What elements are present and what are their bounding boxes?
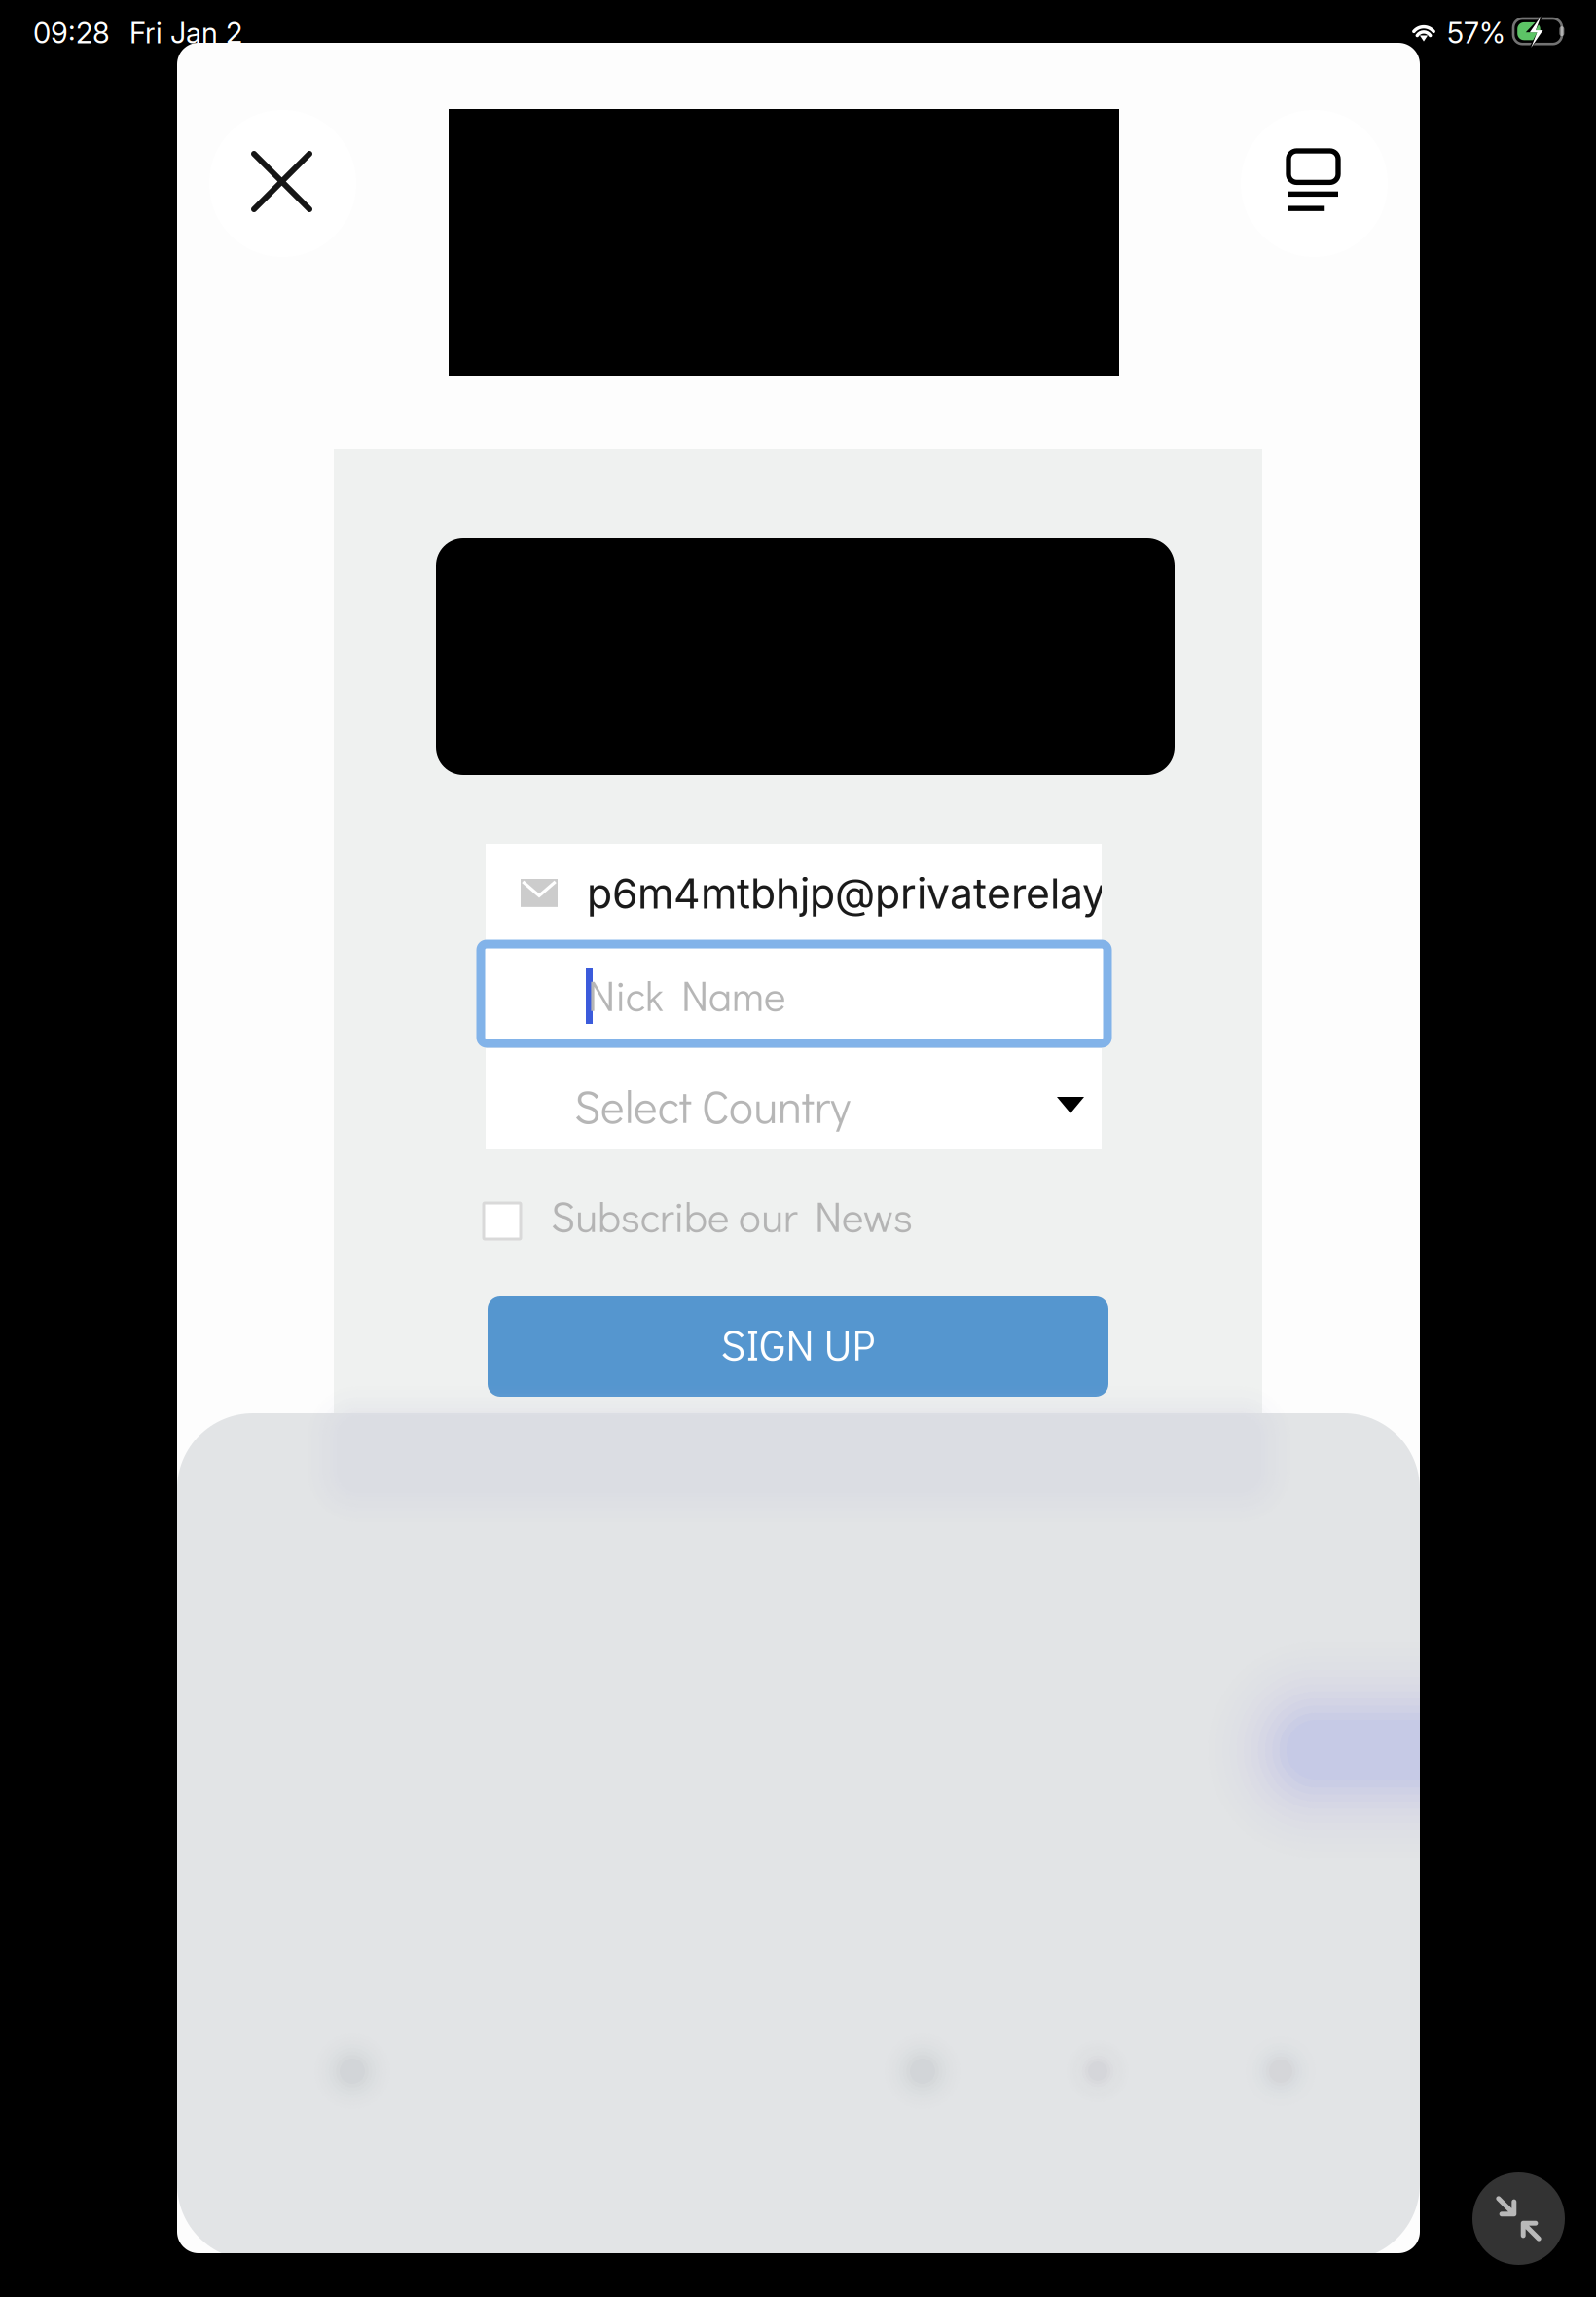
staticText: Select Country — [574, 1076, 851, 1135]
staticText: SIGN UP — [721, 1316, 875, 1372]
staticText: 57% — [1447, 16, 1505, 50]
button[interactable]: Page settings — [1241, 110, 1388, 257]
button[interactable]: Close — [209, 110, 356, 257]
staticText: Fri Jan 2 — [129, 16, 242, 50]
staticText: p6m4mtbhjp@privaterelay — [587, 868, 1106, 919]
staticText: Nick Name — [588, 967, 785, 1022]
button[interactable]: Collapse window — [1472, 2172, 1565, 2265]
button[interactable]: Select Country — [486, 1048, 1102, 1149]
button[interactable]: Nick Name — [481, 944, 1107, 1043]
staticText: 09:28 — [33, 16, 110, 50]
button[interactable]: Subscribe our News — [484, 1185, 990, 1257]
button[interactable]: SIGN UP — [488, 1296, 1108, 1397]
staticText: Subscribe our News — [551, 1188, 913, 1243]
